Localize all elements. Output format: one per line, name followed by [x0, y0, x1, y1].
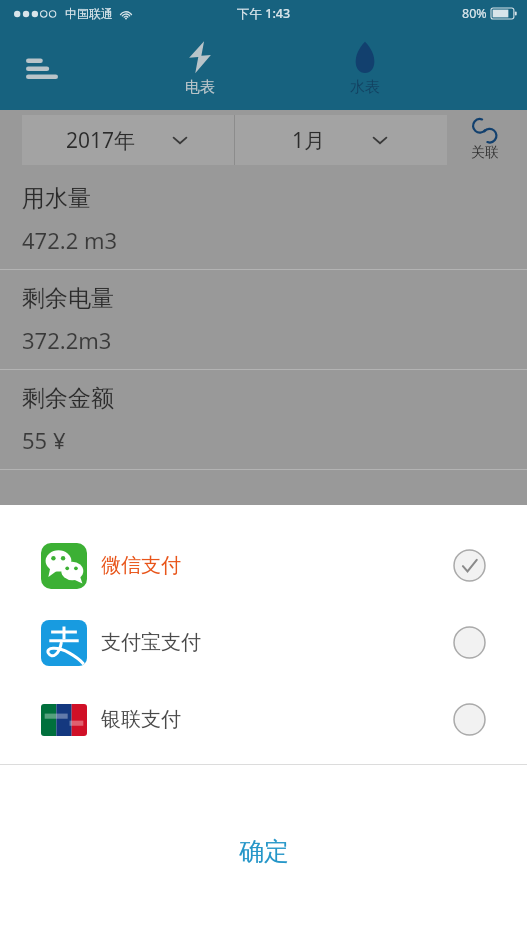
button[interactable]: Menu [14, 40, 70, 96]
staticText: 水表 [350, 78, 380, 97]
button[interactable]: 关联 [457, 118, 513, 162]
staticText: 关联 [471, 144, 499, 162]
staticText: 55 ¥ [22, 425, 66, 455]
button[interactable]: 银联支付 [0, 681, 527, 758]
staticText: 剩余金额 [22, 384, 114, 413]
button[interactable]: 1月 [235, 115, 447, 165]
staticText: 剩余电量 [22, 284, 114, 313]
staticText: 电表 [185, 78, 215, 97]
staticText: 微信支付 [101, 553, 181, 578]
button[interactable]: 确定 [0, 765, 527, 937]
button[interactable]: 2017年 [22, 115, 234, 165]
staticText: 银联支付 [101, 707, 181, 732]
button[interactable]: 支付宝支付 [0, 604, 527, 681]
staticText: 2017年 [66, 126, 136, 155]
staticText: 中国联通 [65, 6, 113, 21]
staticText: 支付宝支付 [101, 630, 201, 655]
staticText: 用水量 [22, 184, 91, 213]
button[interactable]: 剩余电量 [0, 270, 527, 369]
staticText: 确定 [239, 836, 289, 867]
staticText: 80% [462, 5, 487, 22]
staticText: 下午 1:43 [237, 5, 291, 22]
button[interactable]: 微信支付 [0, 527, 527, 604]
button[interactable]: 用水量 [0, 170, 527, 269]
staticText: 1月 [292, 126, 326, 155]
button[interactable]: 电表 [140, 28, 260, 108]
staticText: 372.2m3 [22, 325, 112, 355]
staticText: 472.2 m3 [22, 225, 118, 255]
button[interactable]: 水表 [305, 28, 425, 108]
button[interactable]: 剩余金额 [0, 370, 527, 469]
